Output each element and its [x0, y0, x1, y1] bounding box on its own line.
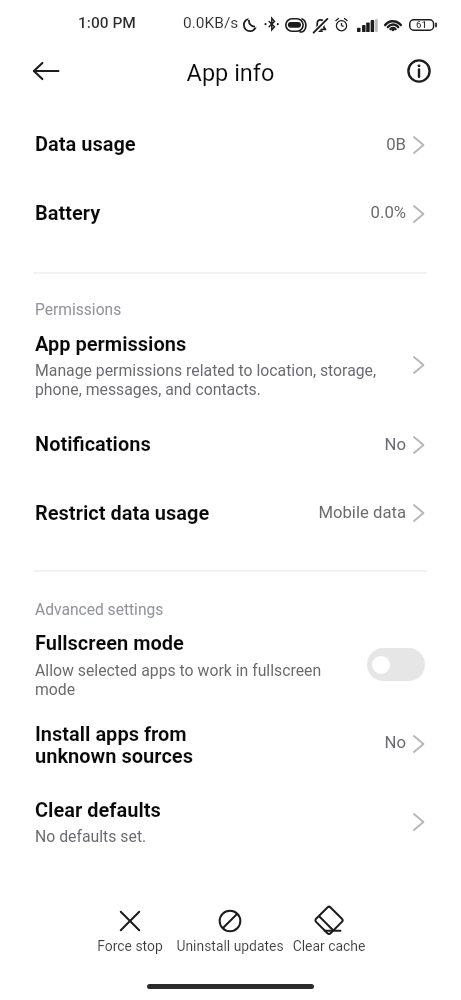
button[interactable]	[75, 900, 185, 960]
button[interactable]	[0, 325, 461, 400]
button[interactable]	[0, 790, 461, 850]
button[interactable]	[0, 626, 461, 700]
staticText: Clear cache	[239, 938, 419, 954]
staticText: No	[0, 435, 406, 455]
staticText: Install apps from unknown sources	[35, 722, 285, 768]
staticText: Advanced settings	[35, 601, 435, 619]
staticText: App permissions	[35, 332, 435, 355]
button[interactable]	[175, 900, 285, 960]
button[interactable]	[0, 117, 461, 157]
staticText: Data usage	[35, 132, 435, 155]
button[interactable]	[0, 712, 461, 774]
button[interactable]	[0, 487, 461, 527]
staticText: App info	[0, 59, 461, 87]
staticText: 0.0%	[0, 203, 406, 223]
staticText: Permissions	[35, 301, 435, 319]
staticText: 0.0KB/s	[183, 14, 461, 32]
staticText: 61	[416, 19, 436, 30]
button[interactable]	[0, 185, 461, 225]
staticText: Manage permissions related to location, …	[35, 361, 395, 399]
staticText: Mobile data	[0, 503, 406, 523]
button[interactable]	[274, 900, 384, 960]
staticText: Restrict data usage	[35, 501, 435, 524]
staticText: 1:00 PM	[78, 14, 461, 32]
staticText: Notifications	[35, 432, 435, 455]
button[interactable]: App details	[401, 53, 437, 89]
staticText: No	[0, 733, 406, 753]
staticText: Allow selected apps to work in fullscree…	[35, 661, 335, 699]
staticText: 0B	[0, 135, 406, 155]
staticText: Uninstall updates	[140, 938, 320, 954]
staticText: No defaults set.	[35, 827, 435, 846]
staticText: Fullscreen mode	[35, 631, 435, 654]
button[interactable]: Back	[26, 51, 66, 91]
staticText: Force stop	[40, 938, 220, 954]
staticText: Battery	[35, 201, 435, 224]
button[interactable]: Fullscreen mode toggle	[367, 648, 425, 681]
staticText: Clear defaults	[35, 798, 435, 821]
button[interactable]	[0, 418, 461, 458]
